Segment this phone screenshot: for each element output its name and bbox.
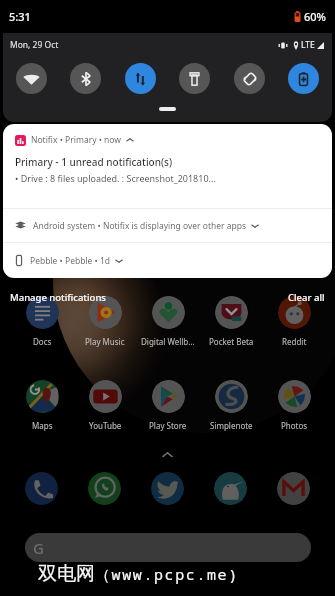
button[interactable]: Clear all	[286, 288, 327, 307]
button[interactable]: Simplenote	[203, 380, 259, 431]
staticText: 5:31	[9, 9, 31, 24]
staticText: YouTube	[89, 420, 122, 431]
button[interactable]: Pebble • Pebble • 1d	[3, 243, 332, 278]
button[interactable]: Bluetooth	[70, 63, 101, 94]
button[interactable]: Digital Wellb...	[140, 296, 196, 347]
staticText: Primary - 1 unread notification(s)	[15, 155, 173, 169]
staticText: Simplenote	[210, 420, 253, 431]
staticText: Maps	[32, 420, 53, 431]
staticText: • Drive : 8 files uploaded. : Screenshot…	[15, 172, 216, 184]
button[interactable]: Battery saver	[288, 63, 319, 94]
button[interactable]: Twitter	[151, 472, 184, 505]
staticText: Pebble • Pebble • 1d	[30, 255, 111, 267]
button[interactable]: Wi-Fi	[16, 63, 47, 94]
staticText: LTE	[301, 39, 315, 51]
button[interactable]: Pocket Beta	[203, 296, 259, 347]
button[interactable]: Photos	[266, 380, 322, 431]
staticText: Reddit	[282, 336, 307, 347]
button[interactable]: Browser	[214, 472, 247, 505]
button[interactable]: Gmail	[277, 472, 310, 505]
staticText: Play Music	[85, 336, 125, 347]
staticText: Play Store	[149, 420, 187, 431]
staticText: Android system • Notifix is displaying o…	[33, 220, 247, 232]
button[interactable]: Docs	[14, 296, 70, 347]
button[interactable]: Phone	[25, 472, 58, 505]
staticText: Photos	[281, 420, 308, 431]
button[interactable]: Auto rotate	[234, 63, 265, 94]
button[interactable]: Play Store	[140, 380, 196, 431]
button[interactable]: YouTube	[77, 380, 133, 431]
staticText: 双电网	[38, 562, 95, 586]
staticText: Clear all	[288, 291, 325, 304]
button[interactable]: Mobile data	[125, 63, 156, 94]
staticText: （www.pcpc.me)	[95, 564, 239, 584]
staticText: Notifix • Primary • now	[31, 134, 122, 146]
button[interactable]: Reddit	[266, 296, 322, 347]
staticText: Pocket Beta	[209, 336, 254, 347]
staticText: 60%	[304, 9, 326, 24]
staticText: G	[33, 538, 44, 558]
button[interactable]: Flashlight	[179, 63, 210, 94]
staticText: Docs	[33, 336, 52, 347]
staticText: Manage notifications	[10, 291, 106, 304]
button[interactable]: Manage notifications	[8, 288, 108, 307]
button[interactable]: Notifix • Primary • now	[3, 124, 332, 208]
button[interactable]: Search	[25, 533, 311, 562]
button[interactable]: WhatsApp	[88, 472, 121, 505]
button[interactable]: Maps	[14, 380, 70, 431]
button[interactable]: Android system • Notifix is displaying o…	[3, 209, 332, 242]
staticText: Mon, 29 Oct	[10, 39, 59, 51]
staticText: Digital Wellb...	[141, 336, 195, 347]
button[interactable]: Play Music	[77, 296, 133, 347]
